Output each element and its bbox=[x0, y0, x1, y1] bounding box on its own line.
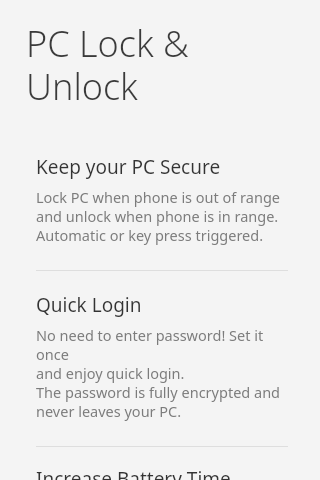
staticText: Increase Battery Time bbox=[36, 466, 231, 480]
staticText: No need to enter password! Set it once a… bbox=[36, 325, 287, 421]
button[interactable]: PC Lock & Unlock bbox=[0, 19, 320, 111]
staticText: Quick Login bbox=[36, 292, 142, 318]
button[interactable]: Keep your PC Secure bbox=[0, 111, 320, 245]
button[interactable]: Quick Login bbox=[0, 271, 320, 421]
staticText: Lock PC when phone is out of range and u… bbox=[36, 187, 280, 245]
button[interactable]: Increase Battery Time bbox=[0, 447, 320, 480]
staticText: Keep your PC Secure bbox=[36, 154, 221, 180]
staticText: PC Lock & Unlock bbox=[26, 19, 308, 111]
